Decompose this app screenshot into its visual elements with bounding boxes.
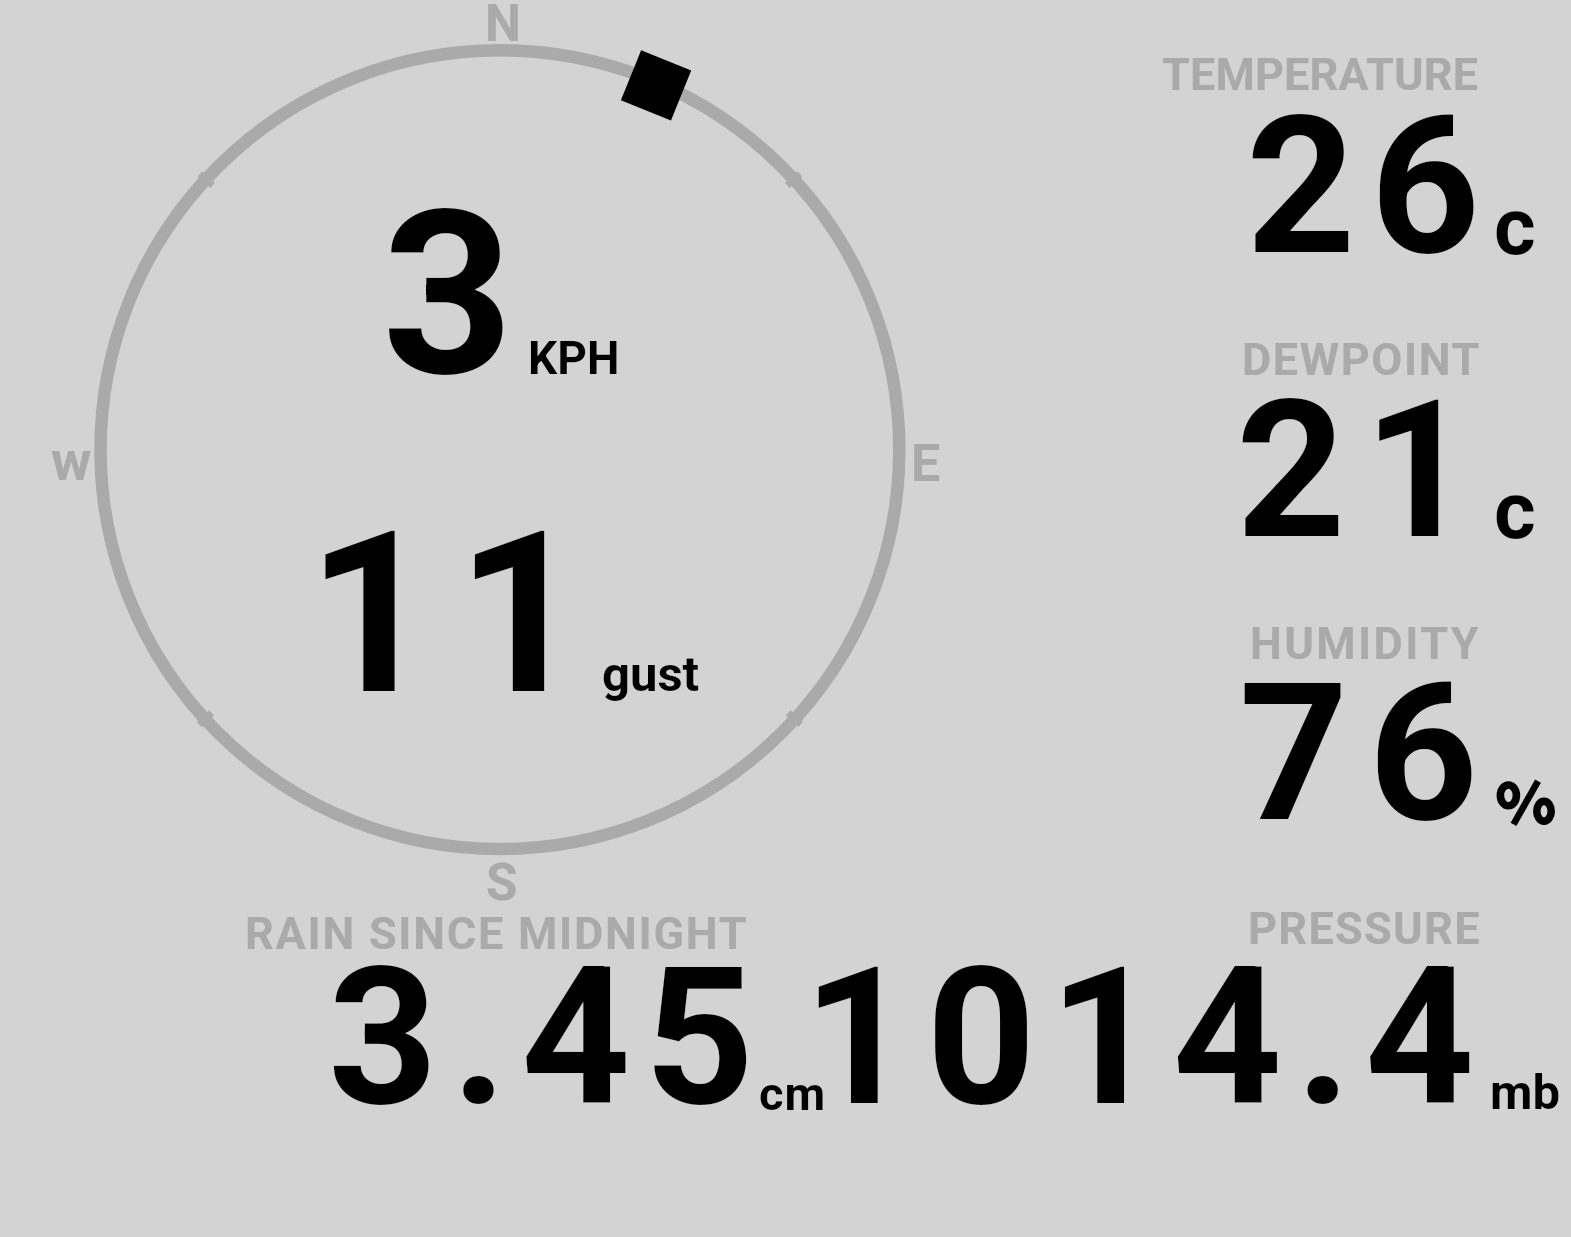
staticText: 26 xyxy=(1246,75,1496,299)
staticText: cm xyxy=(759,1066,827,1121)
staticText: 3.45 xyxy=(328,926,769,1150)
staticText: c xyxy=(1494,464,1536,558)
staticText: 1014.4 xyxy=(803,926,1488,1150)
staticText: RAIN SINCE MIDNIGHT xyxy=(245,907,749,960)
staticText: 3 xyxy=(382,161,514,429)
button[interactable]: Wind speed and direction xyxy=(0,0,1000,900)
staticText: c xyxy=(1494,180,1536,274)
staticText: gust xyxy=(602,646,700,703)
staticText: N xyxy=(485,0,521,54)
button[interactable]: Rain since midnight 3.45 centimetres xyxy=(200,890,840,1130)
staticText: DEWPOINT xyxy=(1242,333,1481,386)
staticText: KPH xyxy=(528,331,620,385)
staticText: mb xyxy=(1490,1064,1561,1121)
button[interactable]: Temperature 26 degrees Celsius xyxy=(1100,40,1571,275)
button[interactable]: Pressure 1014.4 millibars xyxy=(840,890,1571,1130)
staticText: PRESSURE xyxy=(1248,902,1481,955)
button[interactable]: Humidity 76 percent xyxy=(1100,609,1571,844)
staticText: TEMPERATURE xyxy=(1162,48,1479,101)
staticText: 11 xyxy=(307,483,607,746)
staticText: HUMIDITY xyxy=(1250,617,1482,670)
staticText: S xyxy=(486,853,518,913)
staticText: w xyxy=(51,429,92,493)
button[interactable]: Dewpoint 21 degrees Celsius xyxy=(1100,325,1571,560)
staticText: E xyxy=(911,433,941,494)
staticText: 76 xyxy=(1239,642,1499,866)
staticText: 21 xyxy=(1236,359,1492,583)
